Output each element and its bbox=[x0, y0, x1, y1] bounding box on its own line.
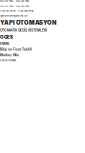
staticText: EMAIL bbox=[0, 42, 10, 45]
staticText: YAPI OTOMASYON bbox=[0, 19, 57, 26]
staticText: OGES bbox=[0, 34, 13, 40]
staticText: OTOMATİK GEÇİŞ SİSTEMLERİ bbox=[0, 28, 47, 32]
staticText: 0216 567 8496 - 0532 366 9498 bbox=[0, 0, 29, 2]
staticText: 0216 567 8496 - 0532 366 9498 bbox=[0, 4, 29, 7]
staticText: Merkez Ofis bbox=[0, 53, 19, 57]
staticText: 0216 567 8496 - 0532 366 9498 bbox=[0, 9, 33, 12]
staticText: Kartal/İstanbul bbox=[0, 59, 16, 62]
staticText: ogesotomasyon@outlook.com bbox=[0, 14, 28, 17]
staticText: Bilgi ve Fiyat Teklifi bbox=[0, 47, 32, 51]
